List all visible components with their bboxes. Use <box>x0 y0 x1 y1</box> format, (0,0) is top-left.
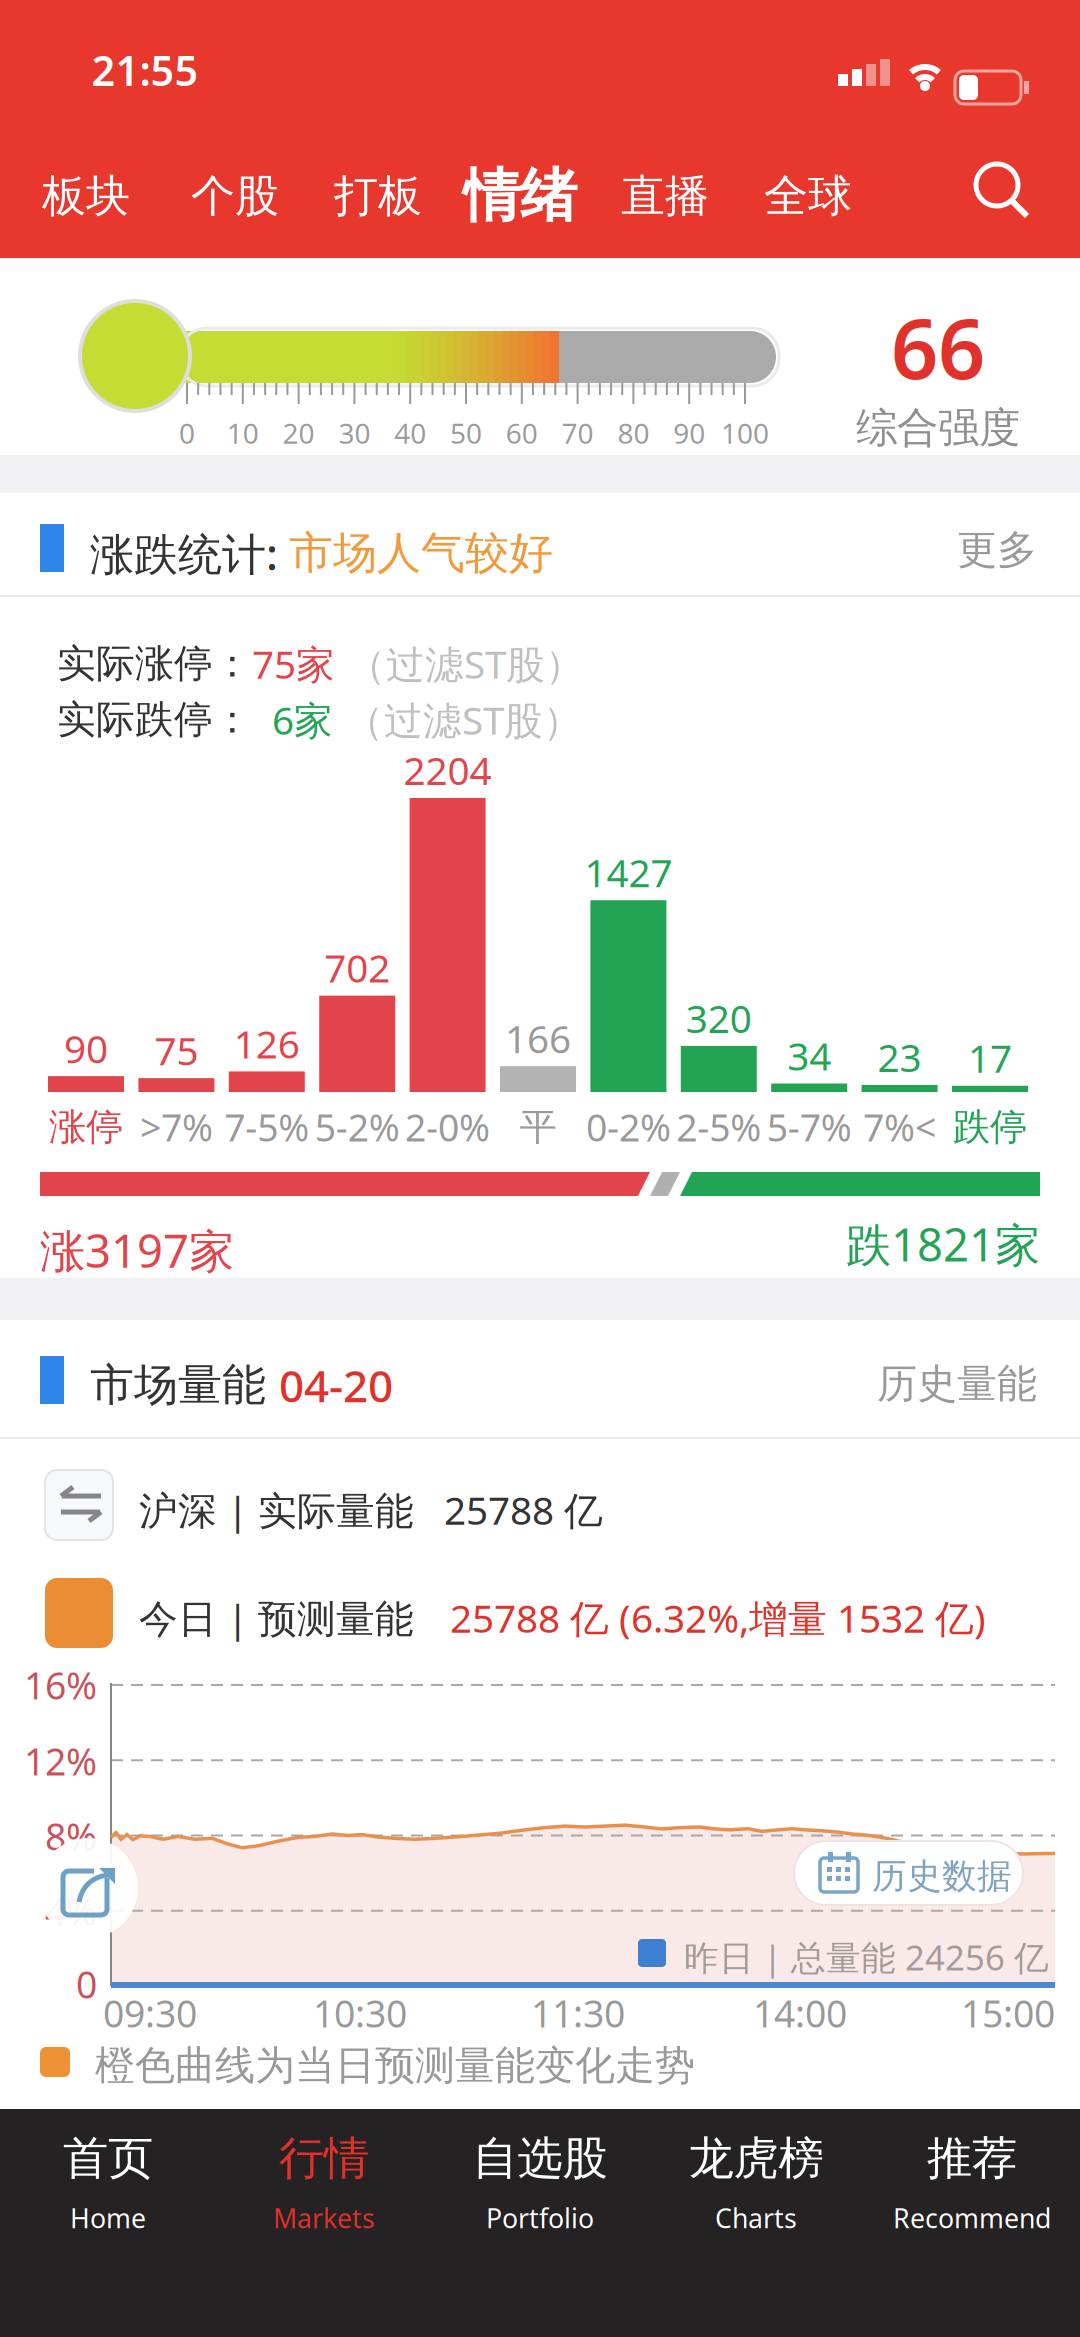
staticText: 沪深 | 实际量能 25788 亿 <box>139 1484 603 1535</box>
staticText: Charts <box>715 2200 797 2235</box>
staticText: 8% <box>45 1811 97 1861</box>
staticText: 5-2% <box>315 1102 400 1152</box>
staticText: 0-2% <box>586 1102 671 1152</box>
staticText: 90 <box>64 1022 108 1074</box>
button[interactable]: 推荐 <box>865 2108 1079 2258</box>
staticText: 今日 | 预测量能 <box>139 1592 450 1643</box>
staticText: 16% <box>24 1660 97 1710</box>
staticText: 60 <box>506 414 538 452</box>
staticText: 7%< <box>863 1102 936 1152</box>
staticText: 龙虎榜 <box>688 2130 823 2186</box>
staticText: 70 <box>562 414 594 452</box>
staticText: 0 <box>179 414 195 452</box>
staticText: 实际涨停： <box>57 640 252 687</box>
staticText: 涨3197家 <box>40 1220 234 1280</box>
staticText: Portfolio <box>486 2200 594 2235</box>
staticText: 2-0% <box>405 1102 490 1152</box>
staticText: 涨停 <box>49 1104 123 1150</box>
staticText: 涨跌统计: <box>90 524 289 582</box>
staticText: 25788 亿 (6.32%,增量 1532 亿) <box>450 1592 986 1643</box>
button[interactable]: 自选股 <box>433 2108 647 2258</box>
staticText: 跌1821家 <box>846 1214 1040 1274</box>
staticText: 打板 <box>334 169 422 223</box>
staticText: 75 <box>154 1024 198 1076</box>
button[interactable]: Share <box>38 1838 138 1938</box>
button[interactable]: 龙虎榜 <box>649 2108 863 2258</box>
staticText: 126 <box>234 1018 300 1069</box>
staticText: 17 <box>968 1032 1012 1083</box>
staticText: 1427 <box>584 846 672 898</box>
staticText: 更多 <box>957 525 1037 574</box>
staticText: 跌停 <box>953 1104 1027 1150</box>
staticText: 0 <box>76 1959 97 2009</box>
button[interactable]: 更多 <box>0 520 1037 580</box>
staticText: 100 <box>721 414 769 452</box>
staticText: （过滤ST股） <box>333 694 582 745</box>
button[interactable]: Search <box>0 0 1080 258</box>
staticText: 平 <box>519 1104 556 1150</box>
staticText: 市场量能 <box>90 1358 279 1412</box>
staticText: 50 <box>450 414 482 452</box>
staticText: 全球 <box>764 169 852 223</box>
staticText: 40 <box>394 414 426 452</box>
staticText: 自选股 <box>472 2130 607 2186</box>
staticText: 90 <box>673 414 705 452</box>
staticText: 04-20 <box>279 1356 393 1414</box>
staticText: 历史数据 <box>872 1855 1012 1898</box>
staticText: 14:00 <box>753 1988 847 2038</box>
staticText: 11:30 <box>531 1988 625 2038</box>
button[interactable]: 板块 <box>13 151 158 241</box>
staticText: 板块 <box>42 169 130 223</box>
staticText: 21:55 <box>91 43 198 97</box>
staticText: （过滤ST股） <box>335 638 584 689</box>
staticText: Markets <box>273 2200 375 2235</box>
staticText: >7% <box>140 1102 213 1152</box>
staticText: 166 <box>505 1012 571 1064</box>
button[interactable]: 行情 <box>217 2108 431 2258</box>
button[interactable]: 历史量能 <box>0 1354 1037 1414</box>
staticText: 个股 <box>191 169 279 223</box>
staticText: Recommend <box>893 2200 1051 2235</box>
staticText: 情绪 <box>463 161 577 231</box>
staticText: 历史量能 <box>877 1359 1037 1408</box>
staticText: 直播 <box>621 169 709 223</box>
button[interactable]: 全球 <box>735 151 880 241</box>
staticText: Home <box>70 2200 146 2235</box>
staticText: 7-5% <box>224 1102 309 1152</box>
staticText: 20 <box>283 414 315 452</box>
button[interactable]: 打板 <box>305 151 450 241</box>
staticText: 昨日 | 总量能 24256 亿 <box>684 1934 1049 1980</box>
button[interactable]: 直播 <box>592 151 737 241</box>
staticText: 10 <box>227 414 259 452</box>
staticText: 34 <box>787 1030 831 1081</box>
staticText: 15:00 <box>961 1988 1055 2038</box>
staticText: 80 <box>617 414 649 452</box>
staticText: 首页 <box>63 2130 153 2186</box>
staticText: 2204 <box>404 744 492 796</box>
staticText: 30 <box>338 414 370 452</box>
staticText: 10:30 <box>313 1988 407 2038</box>
staticText: 推荐 <box>927 2130 1017 2186</box>
button[interactable]: 情绪 <box>447 151 592 241</box>
staticText: 综合强度 <box>856 403 1020 453</box>
staticText: 66 <box>891 292 985 402</box>
staticText: 5-7% <box>767 1102 852 1152</box>
staticText: 23 <box>878 1031 922 1083</box>
staticText: 75家 <box>252 638 335 689</box>
staticText: 市场人气较好 <box>289 526 553 580</box>
button[interactable]: 个股 <box>162 151 307 241</box>
staticText: 行情 <box>279 2130 369 2186</box>
staticText: 4% <box>45 1886 97 1936</box>
button[interactable]: 首页 <box>1 2108 215 2258</box>
staticText: 6家 <box>252 694 333 745</box>
staticText: 实际跌停： <box>57 696 252 743</box>
staticText: 橙色曲线为当日预测量能变化走势 <box>95 2041 695 2090</box>
button[interactable]: 历史数据 <box>794 1841 1023 1905</box>
staticText: 09:30 <box>103 1988 197 2038</box>
staticText: 702 <box>324 942 390 993</box>
staticText: 2-5% <box>676 1102 761 1152</box>
staticText: 320 <box>686 992 752 1043</box>
staticText: 12% <box>24 1736 97 1786</box>
